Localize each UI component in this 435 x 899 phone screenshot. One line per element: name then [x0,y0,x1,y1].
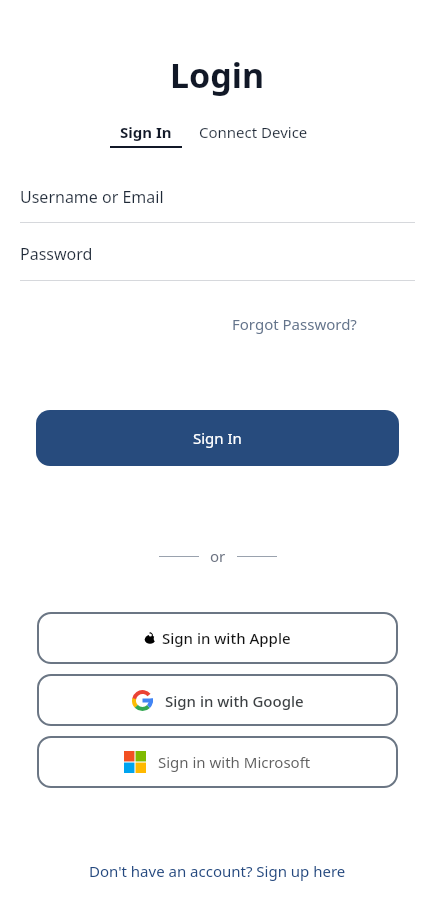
staticText: Password [20,243,93,265]
staticText: Don't have an account? Sign up here [89,861,346,881]
staticText: Sign in with Microsoft [158,752,311,772]
staticText: Login [170,52,265,98]
staticText: Sign In [193,428,242,448]
staticText: Sign in with Google [165,691,304,711]
staticText: Forgot Password? [232,314,357,334]
staticText: or [210,546,226,566]
staticText: Sign in with Apple [162,628,291,648]
staticText: Connect Device [199,122,308,142]
staticText: Username or Email [20,186,164,208]
staticText: Sign In [120,122,172,142]
